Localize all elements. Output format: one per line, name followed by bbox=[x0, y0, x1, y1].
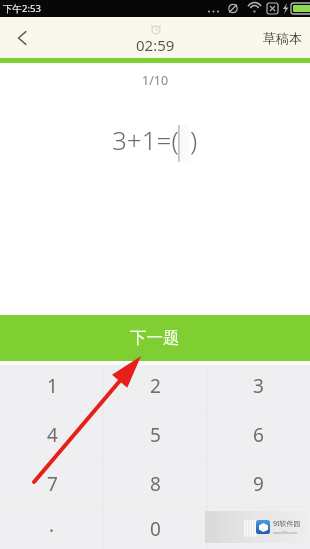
staticText: ) bbox=[190, 122, 198, 157]
staticText: . bbox=[49, 512, 55, 538]
button[interactable]: Back bbox=[0, 17, 44, 58]
staticText: 0 bbox=[150, 516, 161, 542]
button[interactable]: . bbox=[0, 508, 104, 549]
staticText: 02:59 bbox=[136, 35, 175, 55]
staticText: 7 bbox=[47, 471, 58, 497]
staticText: 3+1=( bbox=[112, 122, 179, 157]
button[interactable] bbox=[207, 508, 310, 549]
staticText: 6 bbox=[253, 422, 264, 448]
staticText: 5 bbox=[150, 422, 161, 448]
staticText: 2 bbox=[150, 373, 161, 399]
staticText: 9I软件园 bbox=[273, 519, 301, 529]
button[interactable]: 0 bbox=[104, 508, 207, 549]
staticText: 4 bbox=[47, 422, 58, 448]
staticText: 下一题 bbox=[130, 327, 180, 348]
button[interactable]: 6 bbox=[207, 410, 310, 459]
button[interactable]: 1 bbox=[0, 361, 104, 410]
staticText: 9 bbox=[253, 471, 264, 497]
button[interactable]: 下一题 bbox=[0, 315, 310, 361]
staticText: 8 bbox=[150, 471, 161, 497]
staticText: 1 bbox=[47, 373, 58, 399]
staticText: 下午2:53 bbox=[3, 2, 41, 15]
button[interactable]: 2 bbox=[104, 361, 207, 410]
staticText: 1/10 bbox=[142, 72, 169, 89]
button[interactable]: 8 bbox=[104, 459, 207, 508]
button[interactable]: 4 bbox=[0, 410, 104, 459]
button[interactable]: 3 bbox=[207, 361, 310, 410]
staticText: 草稿本 bbox=[263, 30, 302, 46]
staticText: 3 bbox=[253, 373, 264, 399]
button[interactable]: 7 bbox=[0, 459, 104, 508]
button[interactable]: 草稿本 bbox=[253, 17, 310, 58]
button[interactable]: 9 bbox=[207, 459, 310, 508]
button[interactable]: 5 bbox=[104, 410, 207, 459]
staticText: www.9ifw.com bbox=[273, 530, 297, 535]
